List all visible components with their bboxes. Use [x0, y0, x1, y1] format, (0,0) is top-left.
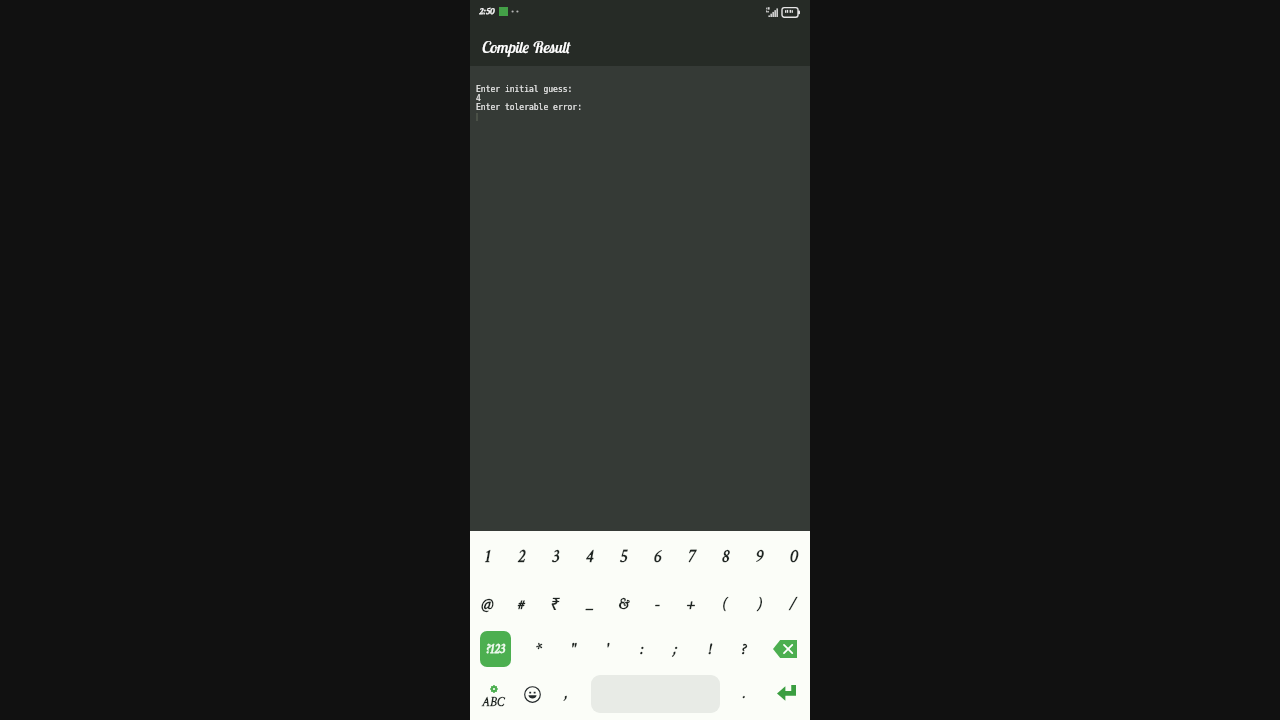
staticText: @ — [481, 593, 494, 615]
staticText: ; — [673, 638, 677, 660]
button[interactable]: ?123 — [480, 631, 511, 667]
button[interactable]: . — [726, 673, 762, 714]
staticText: 9 — [755, 545, 763, 568]
staticText: ) — [757, 593, 762, 615]
button[interactable]: + — [674, 581, 708, 626]
button[interactable]: 4 — [572, 531, 606, 581]
button[interactable]: 7 — [674, 531, 708, 581]
staticText: * — [536, 638, 542, 660]
button[interactable]: ? — [726, 626, 760, 671]
button[interactable]: 0 — [776, 531, 810, 581]
staticText: 2:50 — [479, 5, 495, 18]
button[interactable]: & — [606, 581, 640, 626]
staticText: Enter tolerable error: — [476, 103, 582, 112]
staticText: 5 — [619, 545, 627, 568]
button[interactable]: " — [556, 626, 590, 671]
button[interactable]: Emoji — [517, 673, 548, 714]
staticText: & — [618, 593, 629, 615]
staticText: + — [687, 593, 695, 615]
staticText: Compile Result — [482, 36, 571, 57]
staticText: ABC — [482, 694, 505, 711]
staticText: Enter initial guess: — [476, 85, 573, 94]
button[interactable]: _ — [572, 581, 606, 626]
button[interactable]: ! — [692, 626, 726, 671]
staticText: ( — [723, 593, 728, 615]
button[interactable]: 3 — [538, 531, 572, 581]
staticText: 2 — [517, 545, 525, 568]
button[interactable]: Console output — [470, 66, 810, 531]
staticText: 0 — [789, 545, 798, 568]
button[interactable]: 9 — [742, 531, 776, 581]
button[interactable]: 8 — [708, 531, 742, 581]
staticText: , — [564, 683, 568, 704]
button[interactable]: / — [776, 581, 810, 626]
staticText: # — [518, 593, 525, 615]
staticText: 4 — [476, 94, 481, 103]
staticText: ₹ — [550, 592, 560, 615]
button[interactable]: Enter — [762, 673, 810, 714]
button[interactable]: 1 — [470, 531, 504, 581]
staticText: . — [743, 683, 746, 704]
staticText: 6 — [653, 545, 661, 568]
staticText: 7 — [687, 545, 695, 568]
staticText: 8 — [721, 545, 729, 568]
button[interactable]: ₹ — [538, 581, 572, 626]
button[interactable]: : — [624, 626, 658, 671]
button[interactable]: - — [640, 581, 674, 626]
staticText: - — [655, 593, 660, 615]
button[interactable]: * — [522, 626, 556, 671]
button[interactable]: 6 — [640, 531, 674, 581]
staticText: _ — [585, 593, 594, 615]
button[interactable]: ABC — [475, 673, 511, 714]
button[interactable]: @ — [470, 581, 504, 626]
button[interactable]: ' — [590, 626, 624, 671]
staticText: " — [571, 638, 576, 660]
button[interactable]: ; — [658, 626, 692, 671]
staticText: 1 — [484, 545, 491, 568]
button[interactable]: 2 — [504, 531, 538, 581]
button[interactable]: , — [548, 673, 584, 714]
staticText: : — [639, 638, 644, 660]
staticText: ' — [606, 638, 609, 660]
button[interactable]: ) — [742, 581, 776, 626]
button[interactable]: 5 — [606, 531, 640, 581]
staticText: / — [789, 593, 797, 615]
staticText: 3 — [551, 545, 559, 568]
staticText: ! — [707, 638, 711, 660]
staticText: 4 — [585, 545, 593, 568]
button[interactable]: # — [504, 581, 538, 626]
button[interactable]: Backspace — [760, 626, 810, 671]
staticText: ? — [741, 638, 746, 660]
button[interactable]: ( — [708, 581, 742, 626]
staticText: ?123 — [486, 641, 505, 658]
